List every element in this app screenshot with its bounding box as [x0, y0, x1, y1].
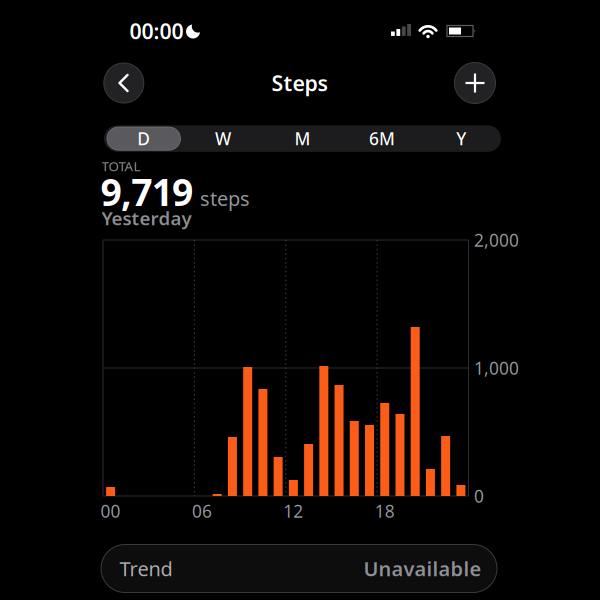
button[interactable]: Back — [103, 62, 144, 103]
staticText: Y — [456, 127, 466, 150]
staticText: 00:00 — [129, 17, 183, 45]
staticText: 0 — [474, 484, 484, 507]
staticText: Trend — [119, 555, 172, 582]
staticText: steps — [200, 185, 250, 211]
button[interactable]: 6M — [342, 125, 422, 152]
button[interactable]: D — [104, 125, 183, 152]
button[interactable]: Add Data — [454, 62, 496, 104]
staticText: D — [137, 127, 150, 150]
staticText: 06 — [192, 499, 212, 522]
button[interactable]: Y — [422, 125, 501, 152]
staticText: 2,000 — [474, 228, 519, 251]
button[interactable]: W — [183, 125, 263, 152]
staticText: W — [215, 127, 231, 150]
staticText: TOTAL — [101, 157, 140, 175]
staticText: Yesterday — [101, 206, 191, 230]
button[interactable]: Trend — [100, 544, 497, 593]
button[interactable]: M — [263, 125, 342, 152]
staticText: M — [294, 127, 310, 150]
staticText: Steps — [271, 69, 328, 97]
staticText: 9,719 — [100, 167, 193, 216]
staticText: 12 — [283, 499, 303, 522]
staticText: 6M — [369, 127, 395, 150]
staticText: 1,000 — [474, 356, 519, 379]
staticText: Unavailable — [363, 555, 481, 582]
staticText: 18 — [375, 499, 395, 522]
staticText: 00 — [100, 499, 120, 522]
